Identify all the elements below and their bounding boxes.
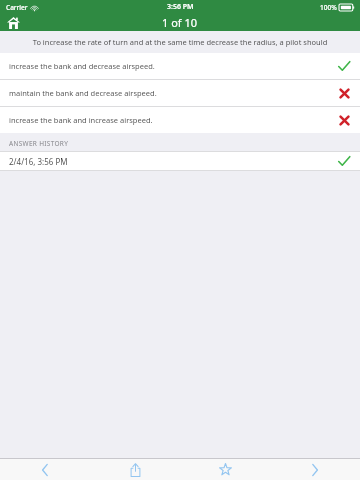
button[interactable]: Share bbox=[90, 459, 180, 480]
staticText: 1 of 10 bbox=[162, 15, 198, 30]
staticText: 2/4/16, 3:56 PM bbox=[9, 156, 338, 167]
staticText: increase the bank and decrease airspeed. bbox=[9, 61, 338, 71]
staticText: maintain the bank and decrease airspeed. bbox=[9, 88, 339, 98]
staticText: To increase the rate of turn and at the … bbox=[16, 37, 344, 47]
button[interactable]: Home bbox=[0, 14, 26, 31]
button[interactable]: maintain the bank and decrease airspeed. bbox=[0, 80, 360, 106]
staticText: increase the bank and increase airspeed. bbox=[9, 115, 339, 125]
button[interactable]: 2/4/16, 3:56 PM bbox=[0, 152, 360, 170]
button[interactable]: Next bbox=[270, 459, 360, 480]
staticText: 3:56 PM bbox=[167, 2, 194, 12]
button[interactable]: increase the bank and increase airspeed. bbox=[0, 107, 360, 133]
button[interactable]: Favorite bbox=[180, 459, 270, 480]
staticText: Carrier bbox=[6, 3, 28, 12]
button[interactable]: increase the bank and decrease airspeed. bbox=[0, 53, 360, 79]
button[interactable]: Previous bbox=[0, 459, 90, 480]
staticText: ANSWER HISTORY bbox=[9, 139, 69, 148]
staticText: 100% bbox=[320, 3, 337, 12]
